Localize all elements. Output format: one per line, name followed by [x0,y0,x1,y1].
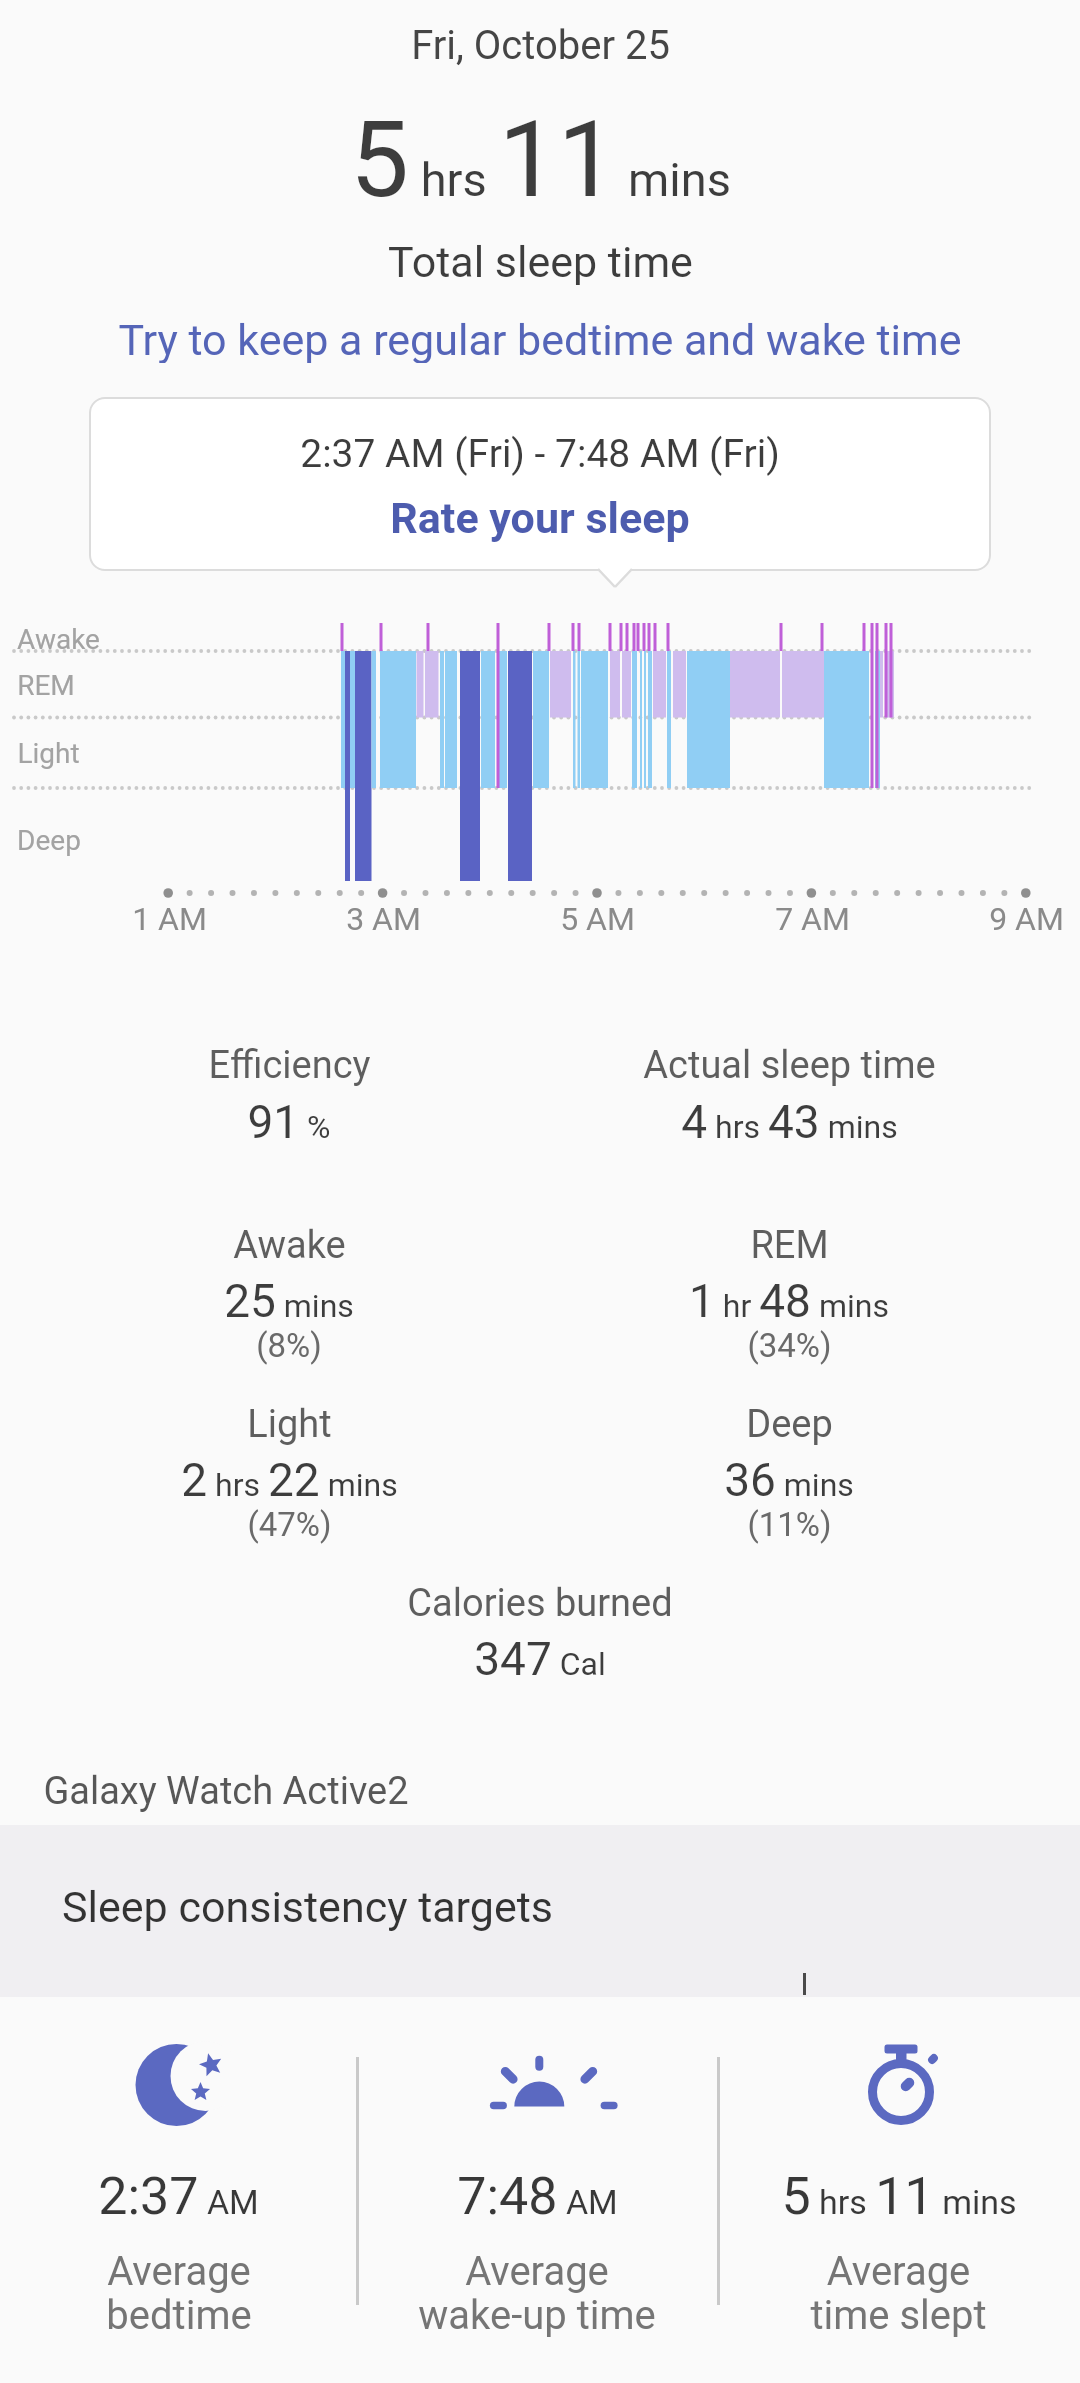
staticText: Deep [17,824,81,857]
button[interactable]: Sleep consistency targets [0,1825,1080,1997]
staticText: Awake [17,623,100,656]
staticText: 3 AM [346,900,421,938]
staticText: 7 AM [775,900,850,938]
staticText: 4 hrs 43 mins [681,1095,898,1149]
staticText: Total sleep time [388,237,693,285]
staticText: 2:37 AM (Fri) - 7:48 AM (Fri) [300,431,780,477]
staticText: REM [17,669,75,702]
staticText: (47%) [247,1505,332,1544]
staticText: (34%) [747,1326,832,1365]
staticText: Average bedtime [106,2248,252,2339]
staticText: REM [750,1223,829,1268]
staticText: Galaxy Watch Active2 [43,1769,409,1813]
staticText: 1 AM [132,900,207,938]
button[interactable]: 2:37 AM (Fri) - 7:48 AM (Fri) [89,397,991,571]
staticText: Actual sleep time [643,1043,936,1088]
staticText: Fri, October 25 [411,22,670,68]
staticText: 5 AM [560,900,635,938]
staticText: Average wake-up time [418,2248,656,2339]
staticText: Calories burned [407,1581,673,1626]
staticText: 36 mins [724,1453,854,1507]
staticText: 2 hrs 22 mins [181,1453,398,1507]
staticText: (8%) [256,1326,322,1365]
staticText: 1 hr 48 mins [689,1274,889,1328]
staticText: Awake [233,1223,346,1268]
staticText: Try to keep a regular bedtime and wake t… [118,315,962,363]
staticText: Light [17,737,80,770]
staticText: 347 Cal [474,1632,606,1686]
staticText: Efficiency [208,1043,371,1088]
staticText: Sleep consistency targets [62,1882,553,1932]
staticText: 5 hrs 11 mins [350,99,731,219]
staticText: Deep [746,1402,833,1447]
staticText: Rate your sleep [390,493,690,543]
staticText: 5 hrs 11 mins [781,2166,1017,2227]
staticText: Light [247,1402,332,1447]
staticText: 2:37 AM [98,2166,259,2227]
staticText: Average time slept [810,2248,987,2339]
staticText: (11%) [747,1505,832,1544]
staticText: 7:48 AM [457,2166,618,2227]
staticText: 25 mins [224,1274,354,1328]
staticText: 9 AM [989,900,1064,938]
staticText: 91 % [247,1095,331,1149]
